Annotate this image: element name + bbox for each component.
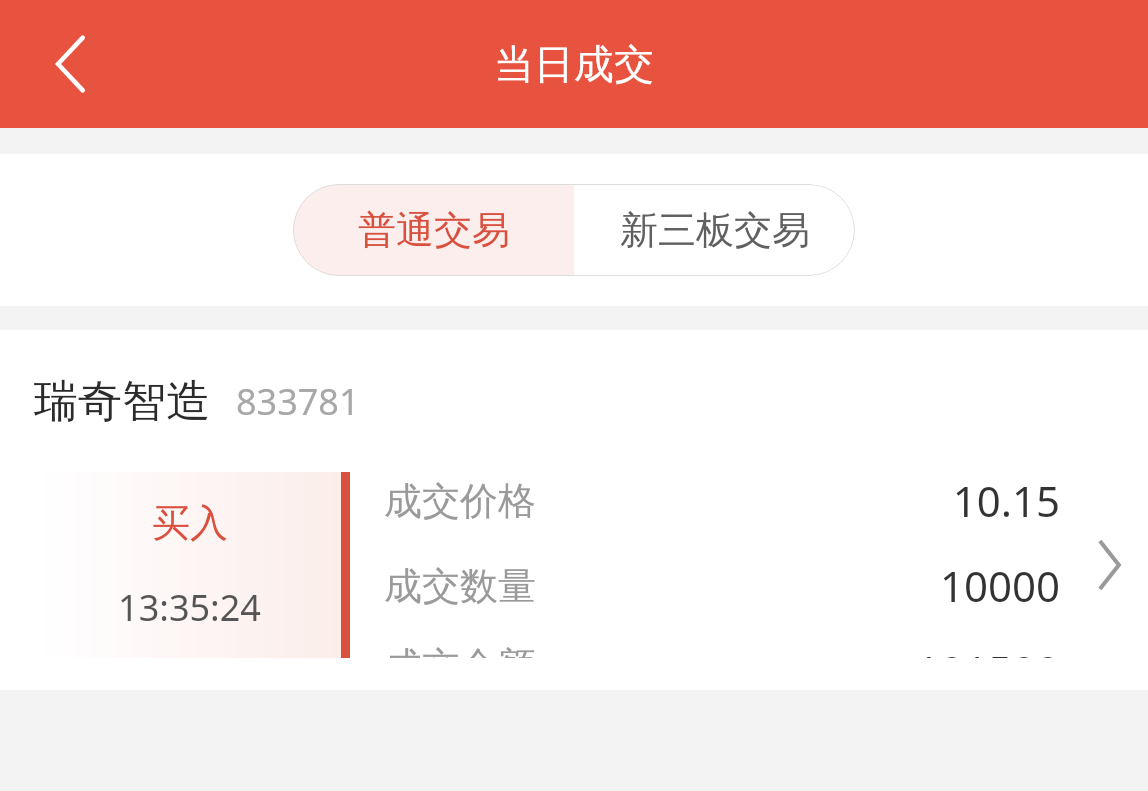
staticText: 101500	[915, 642, 1060, 658]
staticText: 瑞奇智造	[34, 374, 210, 429]
staticText: 成交金额	[384, 642, 536, 658]
staticText: 10000	[939, 557, 1060, 614]
staticText: 成交价格	[384, 477, 536, 525]
button[interactable]: 瑞奇智造	[0, 330, 1148, 690]
other: Details	[1070, 472, 1148, 658]
button[interactable]: 新三板交易	[574, 184, 855, 276]
staticText: 买入	[152, 499, 228, 547]
staticText: 成交数量	[384, 562, 536, 610]
staticText: 普通交易	[358, 206, 510, 254]
staticText: 新三板交易	[620, 206, 810, 254]
staticText: 当日成交	[494, 39, 654, 89]
staticText: 833781	[236, 377, 360, 426]
button[interactable]: Back	[34, 28, 106, 100]
staticText: 13:35:24	[118, 583, 261, 632]
button[interactable]: 普通交易	[293, 184, 574, 276]
staticText: 10.15	[952, 472, 1060, 529]
